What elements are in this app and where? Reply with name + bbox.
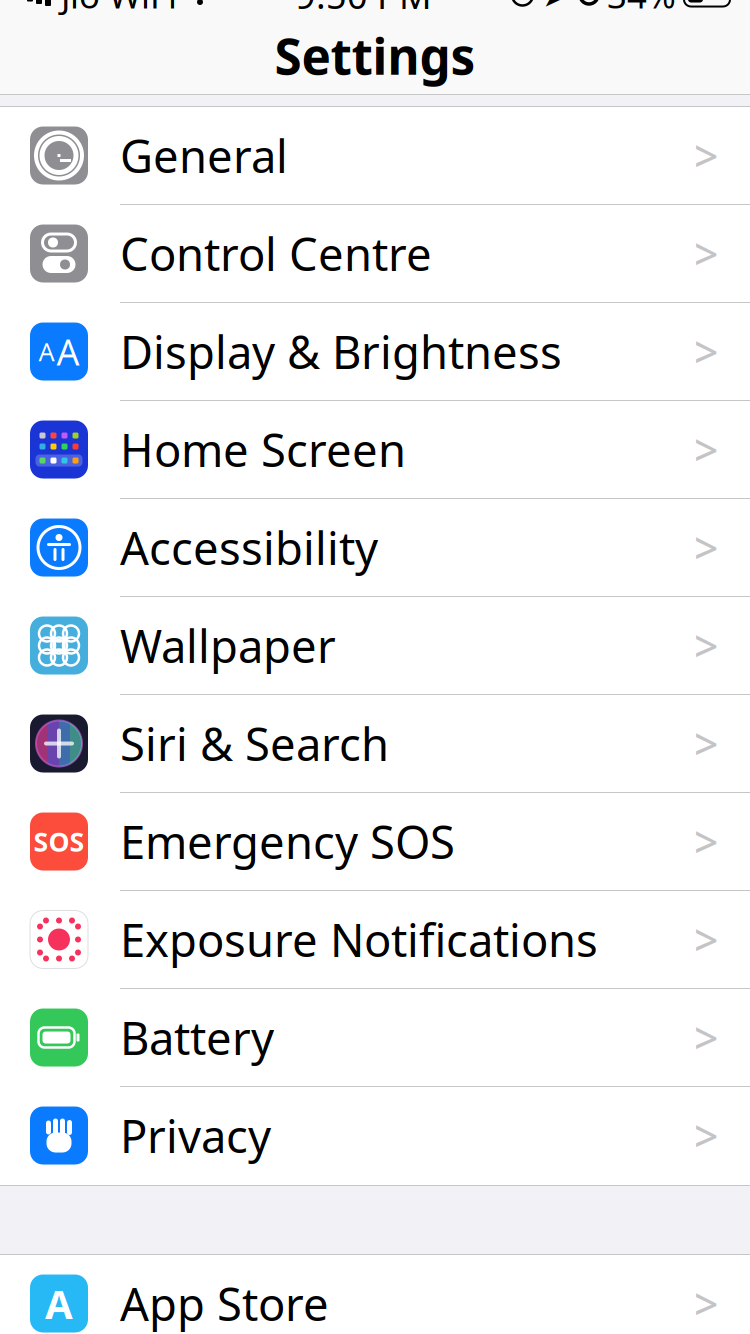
- staticText: >: [694, 813, 718, 870]
- staticText: >: [694, 1107, 718, 1164]
- staticText: Display & Brightness: [120, 321, 562, 382]
- staticText: Jio WiFi: [61, 0, 177, 18]
- staticText: Emergency SOS: [120, 811, 455, 872]
- staticText: >: [694, 1275, 718, 1332]
- staticText: Wallpaper: [120, 615, 336, 676]
- staticText: >: [694, 715, 718, 772]
- staticText: Battery: [120, 1007, 274, 1068]
- staticText: A: [38, 335, 54, 368]
- staticText: ➤: [542, 0, 570, 14]
- button[interactable]: Control Centre: [0, 205, 750, 303]
- button[interactable]: A: [0, 303, 750, 401]
- staticText: General: [120, 125, 288, 186]
- staticText: Home Screen: [120, 419, 406, 480]
- staticText: Accessibility: [120, 517, 378, 578]
- staticText: 34%: [607, 0, 676, 18]
- staticText: >: [694, 127, 718, 184]
- staticText: A: [56, 328, 79, 375]
- staticText: >: [694, 323, 718, 380]
- button[interactable]: Exposure Notifications: [0, 891, 750, 989]
- button[interactable]: Battery: [0, 989, 750, 1087]
- staticText: >: [694, 617, 718, 674]
- staticText: Privacy: [120, 1105, 271, 1166]
- staticText: Control Centre: [120, 223, 432, 284]
- button[interactable]: Privacy: [0, 1087, 750, 1185]
- staticText: App Store: [120, 1273, 329, 1334]
- staticText: >: [694, 225, 718, 282]
- staticText: Siri & Search: [120, 713, 389, 774]
- staticText: >: [694, 421, 718, 478]
- button[interactable]: Accessibility: [0, 499, 750, 597]
- button[interactable]: Siri & Search: [0, 695, 750, 793]
- staticText: SOS: [33, 824, 84, 859]
- button[interactable]: Wallpaper: [0, 597, 750, 695]
- staticText: Settings: [274, 23, 475, 88]
- button[interactable]: A: [0, 1255, 750, 1334]
- staticText: A: [45, 1277, 73, 1330]
- button[interactable]: SOS: [0, 793, 750, 891]
- staticText: 9:50 PM: [295, 0, 432, 19]
- button[interactable]: Home Screen: [0, 401, 750, 499]
- button[interactable]: General: [0, 107, 750, 205]
- staticText: >: [694, 911, 718, 968]
- staticText: >: [694, 519, 718, 576]
- staticText: >: [694, 1009, 718, 1066]
- staticText: Exposure Notifications: [120, 909, 598, 970]
